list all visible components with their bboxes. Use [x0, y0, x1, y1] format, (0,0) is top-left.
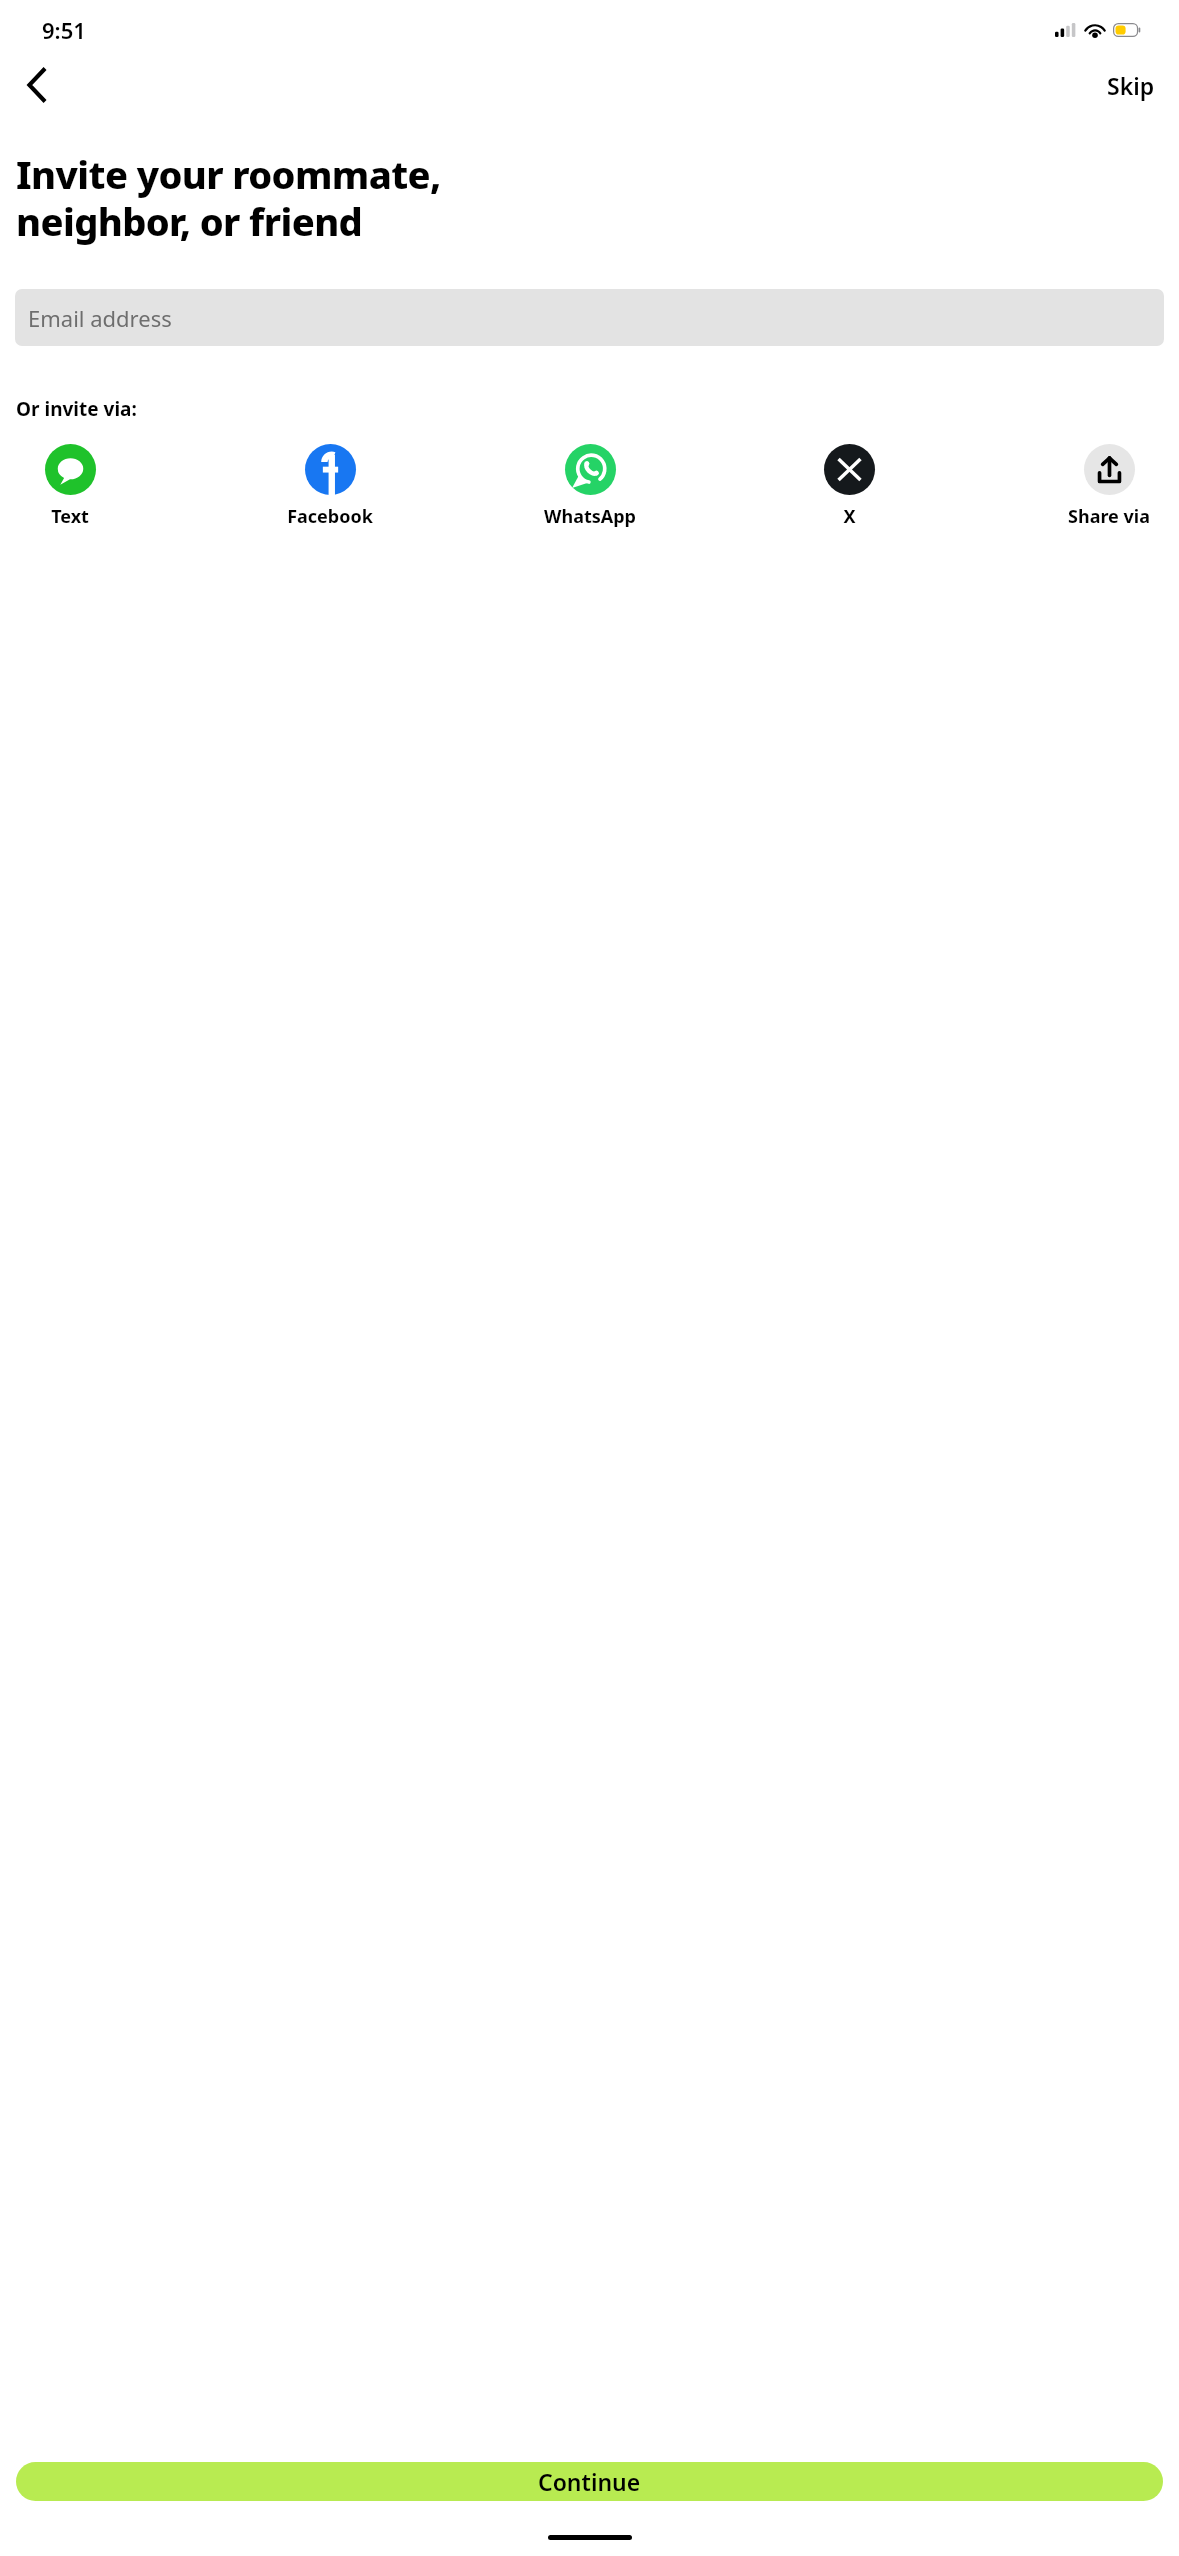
button[interactable]: Continue [16, 2462, 1163, 2501]
staticText: WhatsApp [544, 504, 636, 529]
button[interactable]: Skip [1093, 62, 1169, 109]
staticText: Text [51, 504, 89, 529]
button[interactable]: Email address [15, 289, 1164, 346]
button[interactable]: Back [8, 57, 64, 113]
staticText: Skip [1107, 70, 1155, 101]
button[interactable]: Text [18, 444, 122, 529]
button[interactable]: X [797, 444, 901, 529]
button[interactable]: Share via [1057, 444, 1161, 529]
staticText: Or invite via: [16, 396, 137, 422]
button[interactable]: WhatsApp [538, 444, 642, 529]
staticText: Email address [28, 303, 172, 333]
button[interactable]: Facebook [278, 444, 382, 529]
staticText: 9:51 [42, 15, 86, 45]
staticText: Share via [1068, 504, 1150, 529]
staticText: Facebook [287, 504, 373, 529]
staticText: Continue [538, 2466, 641, 2497]
staticText: X [843, 504, 856, 529]
staticText: Invite your roommate, neighbor, or frien… [16, 148, 441, 247]
